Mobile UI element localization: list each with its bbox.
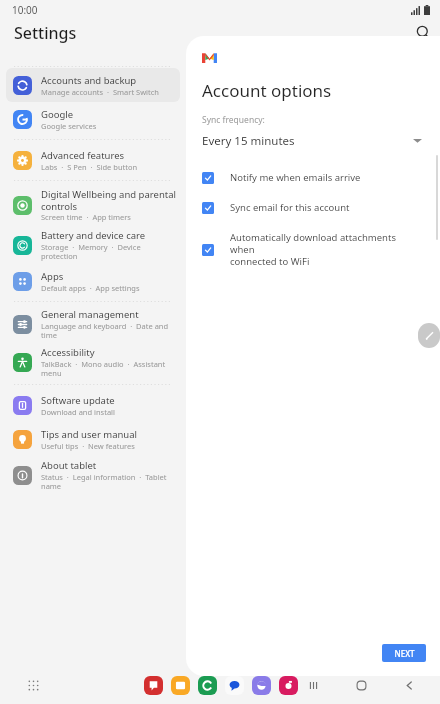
staticText: Accounts and backup [41,74,137,87]
staticText: Software update [41,394,115,407]
button[interactable]: App [279,676,298,695]
staticText: Google [41,108,74,121]
button[interactable]: Tips and user manual [6,422,180,456]
button[interactable]: App [144,676,163,695]
staticText: Google services [41,121,97,131]
button[interactable]: Back [396,672,422,698]
button[interactable]: Home [348,672,374,698]
staticText: Every 15 minutes [202,133,295,149]
staticText: General management [41,308,139,321]
staticText: Digital Wellbeing and parental controls [41,188,176,212]
staticText: Battery and device care [41,229,146,242]
staticText: Sync email for this account [230,201,350,214]
staticText: Manage accounts · Smart Switch [41,87,159,97]
button[interactable]: Edit [418,323,440,348]
staticText: Accessibility [41,346,95,359]
staticText: 10:00 [12,3,38,17]
button[interactable]: App [252,676,271,695]
button[interactable]: About tablet [6,456,180,494]
button[interactable]: App [198,676,217,695]
staticText: Labs · S Pen · Side button [41,162,138,172]
button[interactable]: Apps [6,264,180,298]
staticText: Automatically download attachments when … [230,231,416,268]
staticText: Download and install [41,407,115,417]
staticText: Settings [14,22,77,44]
button[interactable]: Battery and device care [6,226,180,264]
button[interactable]: Sync email for this account [202,201,416,214]
button[interactable]: Google [6,102,180,136]
button[interactable]: Search [406,20,440,45]
button[interactable]: Every 15 minutes [202,133,422,149]
button[interactable]: Digital Wellbeing and parental controls [6,184,180,226]
button[interactable]: Recents [300,672,326,698]
button[interactable]: Accounts and backup [6,68,180,102]
button[interactable]: Advanced features [6,143,180,177]
staticText: Screen time · App timers [41,212,131,222]
staticText: Default apps · App settings [41,283,140,293]
button[interactable]: Accessibility [6,343,180,381]
staticText: Tips and user manual [41,428,138,441]
button[interactable]: Automatically download attachments when … [202,231,416,268]
staticText: Notify me when emails arrive [230,171,361,184]
staticText: Apps [41,270,64,283]
button[interactable]: All apps [22,674,44,696]
button[interactable]: General management [6,305,180,343]
button[interactable]: App [171,676,190,695]
button[interactable]: NEXT [382,644,426,662]
staticText: About tablet [41,459,97,472]
staticText: Language and keyboard · Date and time [41,321,176,340]
button[interactable]: App [225,676,244,695]
staticText: Account options [202,79,332,102]
button[interactable]: Notify me when emails arrive [202,171,416,184]
staticText: Useful tips · New features [41,441,135,451]
staticText: Advanced features [41,149,125,162]
staticText: TalkBack · Mono audio · Assistant menu [41,359,176,378]
staticText: NEXT [394,648,415,659]
button[interactable]: Software update [6,388,180,422]
staticText: Storage · Memory · Device protection [41,242,176,261]
staticText: Sync frequency: [202,114,265,126]
staticText: Status · Legal information · Tablet name [41,472,176,491]
